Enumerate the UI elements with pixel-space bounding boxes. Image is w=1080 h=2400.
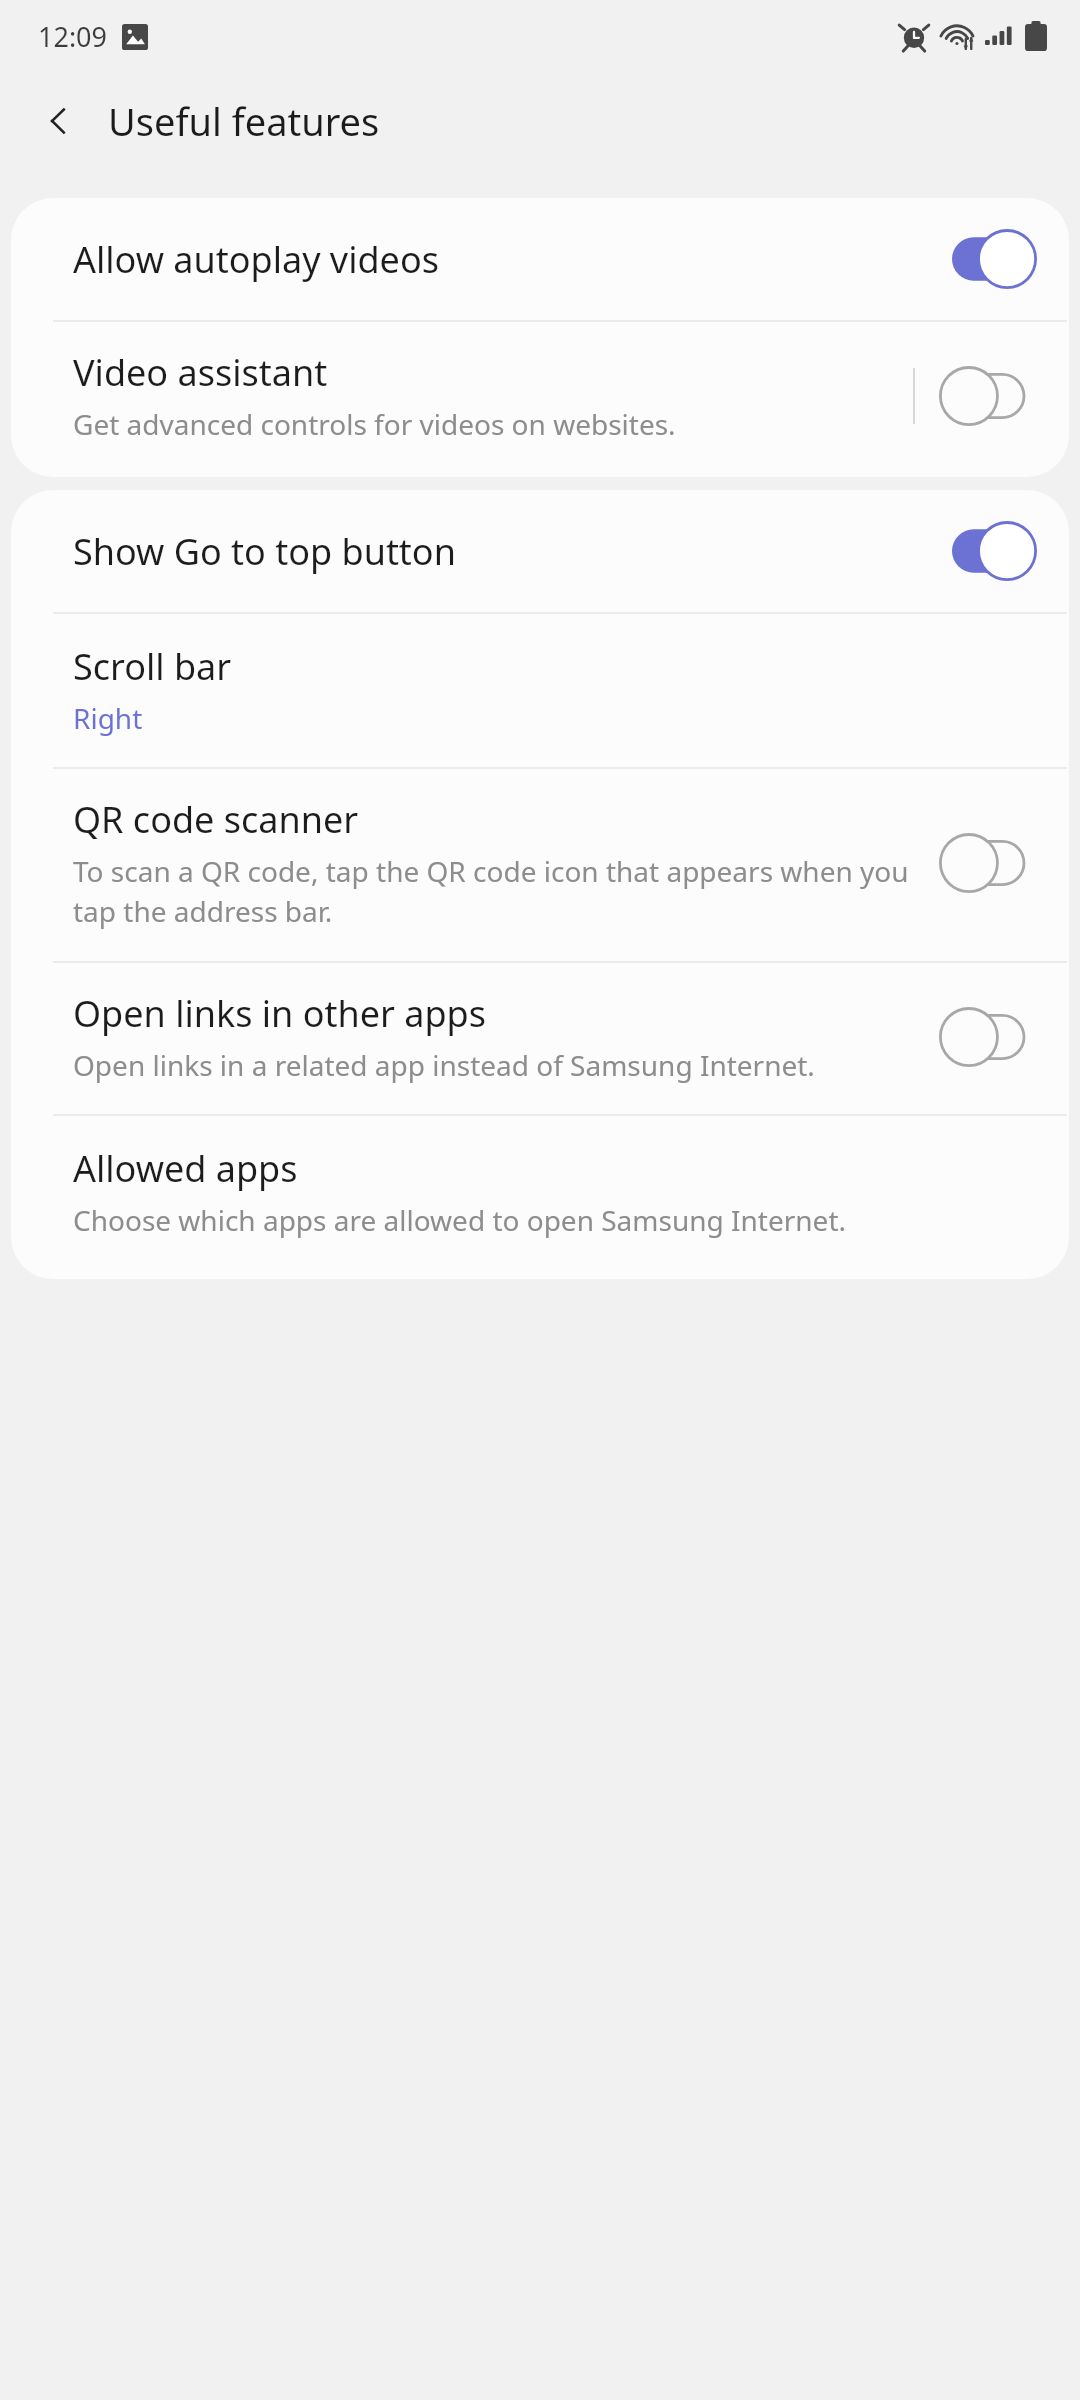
button[interactable]: Allowed apps [11,1116,1069,1279]
staticText: Allowed apps [73,1144,298,1193]
button[interactable]: Toggle on [943,228,1033,290]
button[interactable]: Toggle off [943,365,1033,427]
staticText: Open links in other apps [73,989,486,1038]
staticText: Show Go to top button [73,527,456,576]
staticText: 12:09 [38,18,108,55]
button[interactable]: Video assistant [11,322,1069,477]
button[interactable]: Scroll bar [11,614,1069,767]
button[interactable]: Allow autoplay videos [11,198,1069,320]
staticText: Scroll bar [73,642,232,691]
staticText: Choose which apps are allowed to open Sa… [73,1201,846,1239]
button[interactable]: Toggle off [943,832,1033,894]
staticText: Open links in a related app instead of S… [73,1046,815,1084]
button[interactable]: Show Go to top button [11,490,1069,612]
staticText: Right [73,699,143,737]
staticText: To scan a QR code, tap the QR code icon … [73,852,925,931]
staticText: QR code scanner [73,795,359,844]
button[interactable]: Toggle on [943,520,1033,582]
button[interactable]: Back [30,92,88,150]
staticText: Allow autoplay videos [73,235,439,284]
staticText: Video assistant [73,348,328,397]
staticText: Useful features [108,95,380,147]
button[interactable]: Toggle off [943,1006,1033,1068]
button[interactable]: Open links in other apps [11,963,1069,1114]
staticText: Get advanced controls for videos on webs… [73,405,676,443]
button[interactable]: QR code scanner [11,769,1069,961]
